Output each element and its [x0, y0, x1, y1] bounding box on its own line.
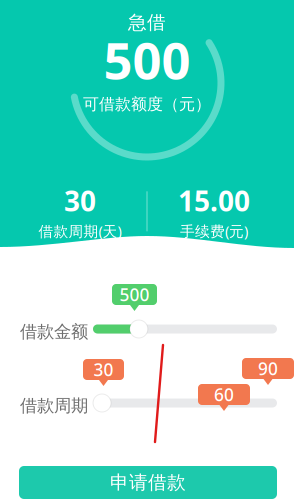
staticText: 500 [119, 283, 149, 306]
staticText: 急借 [128, 11, 166, 34]
staticText: 申请借款 [110, 471, 186, 494]
staticText: 借款周期(天) [38, 221, 121, 241]
staticText: 30 [93, 358, 113, 381]
staticText: 借款周期 [20, 395, 88, 416]
staticText: 500 [103, 26, 190, 93]
staticText: 60 [214, 383, 234, 406]
staticText: 手续费(元) [180, 221, 248, 241]
button[interactable]: 申请借款 [19, 466, 277, 499]
staticText: 30 [64, 182, 96, 219]
staticText: 可借款额度（元） [83, 94, 211, 114]
staticText: 90 [258, 357, 278, 380]
staticText: 借款金额 [20, 321, 88, 342]
staticText: 15.00 [178, 182, 250, 219]
